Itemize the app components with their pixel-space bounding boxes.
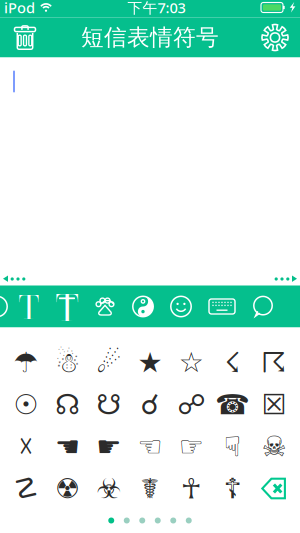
button[interactable]: ☄	[88, 341, 129, 383]
staticText: ☤	[140, 472, 159, 505]
staticText: ☥	[181, 472, 202, 505]
button[interactable]: ☂	[5, 341, 47, 383]
button[interactable]: ☤	[129, 467, 171, 509]
staticText: iPod	[4, 0, 35, 17]
staticText: ☎	[215, 388, 250, 421]
staticText: ☈	[261, 346, 286, 379]
button[interactable]: ☊	[47, 383, 88, 425]
button[interactable]: ☋	[88, 383, 129, 425]
button[interactable]: ☢	[47, 467, 88, 509]
staticText: ☣	[96, 472, 121, 505]
staticText: ☞	[179, 430, 204, 463]
button[interactable]: Clear	[0, 17, 50, 57]
staticText: ☄	[96, 346, 121, 379]
staticText: ☢	[55, 472, 80, 505]
button[interactable]: ☟	[212, 425, 253, 467]
button[interactable]: ☍	[171, 383, 212, 425]
button[interactable]: Text size large	[48, 285, 86, 327]
button[interactable]: Messages	[244, 285, 282, 327]
button[interactable]: ☥	[171, 467, 212, 509]
button[interactable]: Animals	[86, 285, 124, 327]
button[interactable]: ☆	[171, 341, 212, 383]
staticText: ★	[137, 346, 162, 379]
button[interactable]: ☡	[5, 467, 47, 509]
button[interactable]: ☚	[47, 425, 88, 467]
staticText: ☋	[96, 388, 121, 421]
staticText: ☆	[179, 346, 204, 379]
staticText: 短信表情符号	[81, 24, 219, 51]
staticText: ☍	[177, 388, 205, 421]
staticText: ☚	[55, 430, 80, 463]
staticText: ☂	[14, 346, 39, 379]
button[interactable]: Smileys	[162, 285, 200, 327]
staticText: ☟	[224, 430, 241, 463]
button[interactable]: Text size small	[10, 285, 48, 327]
button[interactable]: ☒	[253, 383, 294, 425]
staticText: ☉	[14, 388, 39, 421]
button[interactable]: ☉	[5, 383, 47, 425]
staticText: ☓	[19, 430, 34, 463]
button[interactable]: ☞	[171, 425, 212, 467]
button[interactable]: ☎	[212, 383, 253, 425]
button[interactable]: ☣	[88, 467, 129, 509]
button[interactable]: ☃	[47, 341, 88, 383]
button[interactable]: Faces	[0, 285, 10, 327]
staticText: ☊	[55, 388, 80, 421]
button[interactable]: ☜	[129, 425, 171, 467]
staticText: ☦	[224, 472, 242, 505]
staticText: ☌	[140, 388, 159, 421]
button[interactable]: ☇	[212, 341, 253, 383]
button[interactable]: Settings	[250, 17, 300, 57]
staticText: ☠	[261, 430, 286, 463]
button[interactable]: ☛	[88, 425, 129, 467]
button[interactable]: Keyboard	[200, 285, 244, 327]
staticText: T	[18, 283, 39, 332]
button[interactable]: ☦	[212, 467, 253, 509]
staticText: ☒	[261, 388, 286, 421]
staticText: ☜	[137, 430, 162, 463]
staticText: 下午7:03	[127, 0, 185, 17]
button[interactable]: ☠	[253, 425, 294, 467]
staticText: ☡	[14, 472, 39, 505]
staticText: ☛	[96, 430, 121, 463]
button[interactable]: ☈	[253, 341, 294, 383]
staticText: T	[55, 280, 78, 335]
button[interactable]: ☓	[5, 425, 47, 467]
button[interactable]: Symbols	[124, 285, 162, 327]
button[interactable]: ★	[129, 341, 171, 383]
staticText: ☇	[225, 346, 241, 379]
staticText: ☃	[55, 346, 80, 379]
button[interactable]: Delete	[253, 467, 294, 509]
button[interactable]: ☌	[129, 383, 171, 425]
